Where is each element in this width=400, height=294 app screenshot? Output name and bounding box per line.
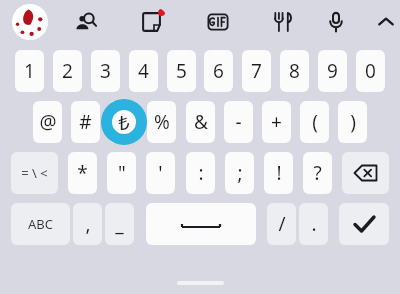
- button[interactable]: 5: [167, 50, 196, 92]
- button[interactable]: ₺: [109, 101, 138, 143]
- staticText: /: [278, 211, 286, 237]
- button[interactable]: Voice input: [320, 6, 352, 38]
- staticText: *: [77, 160, 88, 186]
- button[interactable]: ,: [73, 203, 102, 245]
- staticText: ': [158, 160, 163, 186]
- button[interactable]: Space: [146, 203, 256, 245]
- button[interactable]: @: [33, 101, 62, 143]
- button[interactable]: Enter: [339, 203, 389, 245]
- staticText: !: [276, 160, 282, 186]
- staticText: ₺: [118, 109, 130, 136]
- staticText: 1: [24, 58, 35, 84]
- button[interactable]: 6: [204, 50, 233, 92]
- button[interactable]: ABC: [11, 203, 70, 245]
- staticText: 0: [365, 58, 376, 84]
- button[interactable]: = \ <: [11, 152, 58, 194]
- button[interactable]: -: [224, 101, 253, 143]
- staticText: #: [79, 109, 92, 135]
- button[interactable]: Stickers: [136, 6, 168, 38]
- staticText: -: [235, 109, 242, 135]
- button[interactable]: 4: [129, 50, 158, 92]
- staticText: ;: [237, 160, 243, 186]
- button[interactable]: &: [186, 101, 215, 143]
- button[interactable]: 2: [53, 50, 82, 92]
- staticText: 3: [100, 58, 111, 84]
- button[interactable]: ": [107, 152, 136, 194]
- staticText: ": [118, 160, 126, 186]
- staticText: 9: [327, 58, 338, 84]
- button[interactable]: Search emoji: [70, 6, 102, 38]
- button[interactable]: *: [68, 152, 97, 194]
- staticText: ,: [85, 211, 91, 237]
- button[interactable]: 0: [356, 50, 385, 92]
- button[interactable]: 8: [280, 50, 309, 92]
- staticText: 6: [213, 58, 224, 84]
- button[interactable]: Backspace: [342, 152, 389, 194]
- button[interactable]: ): [338, 101, 367, 143]
- staticText: &: [194, 109, 208, 135]
- button[interactable]: (: [300, 101, 329, 143]
- button[interactable]: _: [105, 203, 134, 245]
- staticText: .: [311, 211, 317, 237]
- button[interactable]: /: [267, 203, 296, 245]
- staticText: 7: [251, 58, 262, 84]
- button[interactable]: 1: [15, 50, 44, 92]
- staticText: ?: [313, 160, 322, 186]
- staticText: ABC: [28, 215, 53, 233]
- button[interactable]: !: [264, 152, 293, 194]
- button[interactable]: +: [262, 101, 291, 143]
- staticText: +: [271, 109, 282, 135]
- staticText: %: [154, 109, 170, 135]
- staticText: = \ <: [21, 164, 48, 182]
- button[interactable]: 3: [91, 50, 120, 92]
- button[interactable]: ?: [303, 152, 332, 194]
- staticText: 8: [289, 58, 300, 84]
- button[interactable]: 7: [242, 50, 271, 92]
- button[interactable]: ': [146, 152, 175, 194]
- staticText: 4: [138, 58, 149, 84]
- button[interactable]: GIF: [202, 6, 234, 38]
- button[interactable]: 9: [318, 50, 347, 92]
- button[interactable]: Food: [267, 6, 299, 38]
- button[interactable]: Expand: [370, 6, 400, 38]
- staticText: 2: [62, 58, 73, 84]
- staticText: :: [198, 160, 204, 186]
- button[interactable]: .: [299, 203, 328, 245]
- staticText: (: [312, 109, 318, 135]
- staticText: ): [350, 109, 356, 135]
- button[interactable]: #: [71, 101, 100, 143]
- staticText: _: [115, 211, 124, 237]
- button[interactable]: Stickers: [12, 4, 48, 40]
- button[interactable]: %: [147, 101, 176, 143]
- button[interactable]: ;: [225, 152, 254, 194]
- staticText: @: [39, 109, 57, 135]
- button[interactable]: :: [186, 152, 215, 194]
- staticText: 5: [176, 58, 187, 84]
